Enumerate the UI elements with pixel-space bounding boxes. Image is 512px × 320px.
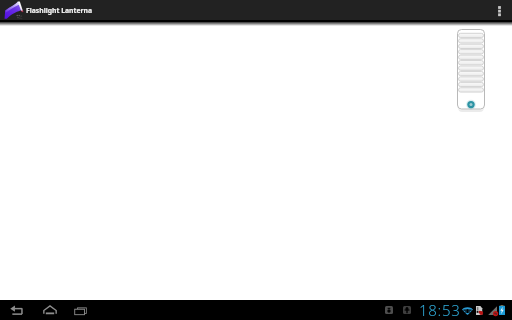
staticText: Flashlight Lanterna bbox=[26, 6, 92, 15]
button[interactable]: Recent apps bbox=[69, 300, 91, 320]
button[interactable]: Back bbox=[5, 300, 27, 320]
button[interactable]: More options bbox=[488, 0, 510, 20]
button[interactable]: Home bbox=[39, 300, 61, 320]
button[interactable]: Flashlight switch bbox=[457, 29, 485, 112]
staticText: 18:53 bbox=[419, 300, 461, 320]
